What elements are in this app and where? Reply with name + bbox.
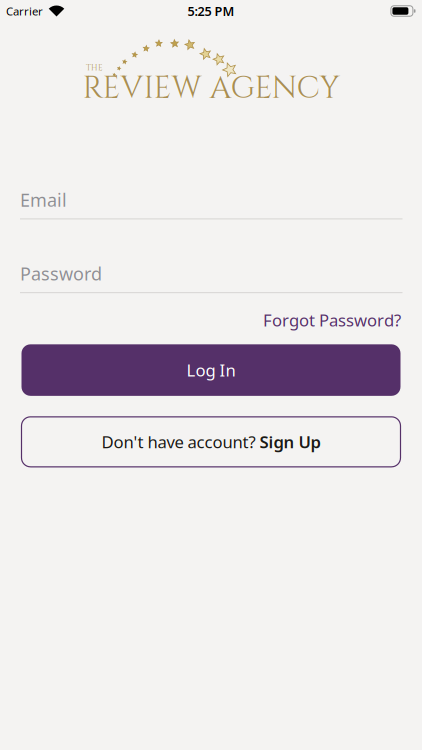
- staticText: REVIEW AGENCY: [82, 68, 339, 109]
- staticText: Forgot Password?: [263, 309, 401, 331]
- staticText: Log In: [186, 359, 235, 381]
- staticText: Don't have account? Sign Up: [101, 431, 320, 453]
- staticText: THE: [86, 62, 103, 73]
- staticText: Email: [20, 187, 67, 212]
- button[interactable]: Log In: [21, 344, 400, 396]
- button[interactable]: Forgot Password?: [263, 309, 401, 331]
- staticText: Carrier: [6, 3, 43, 19]
- button[interactable]: Don't have account? Sign Up: [21, 417, 400, 467]
- staticText: Password: [20, 261, 102, 286]
- staticText: 5:25 PM: [187, 2, 234, 20]
